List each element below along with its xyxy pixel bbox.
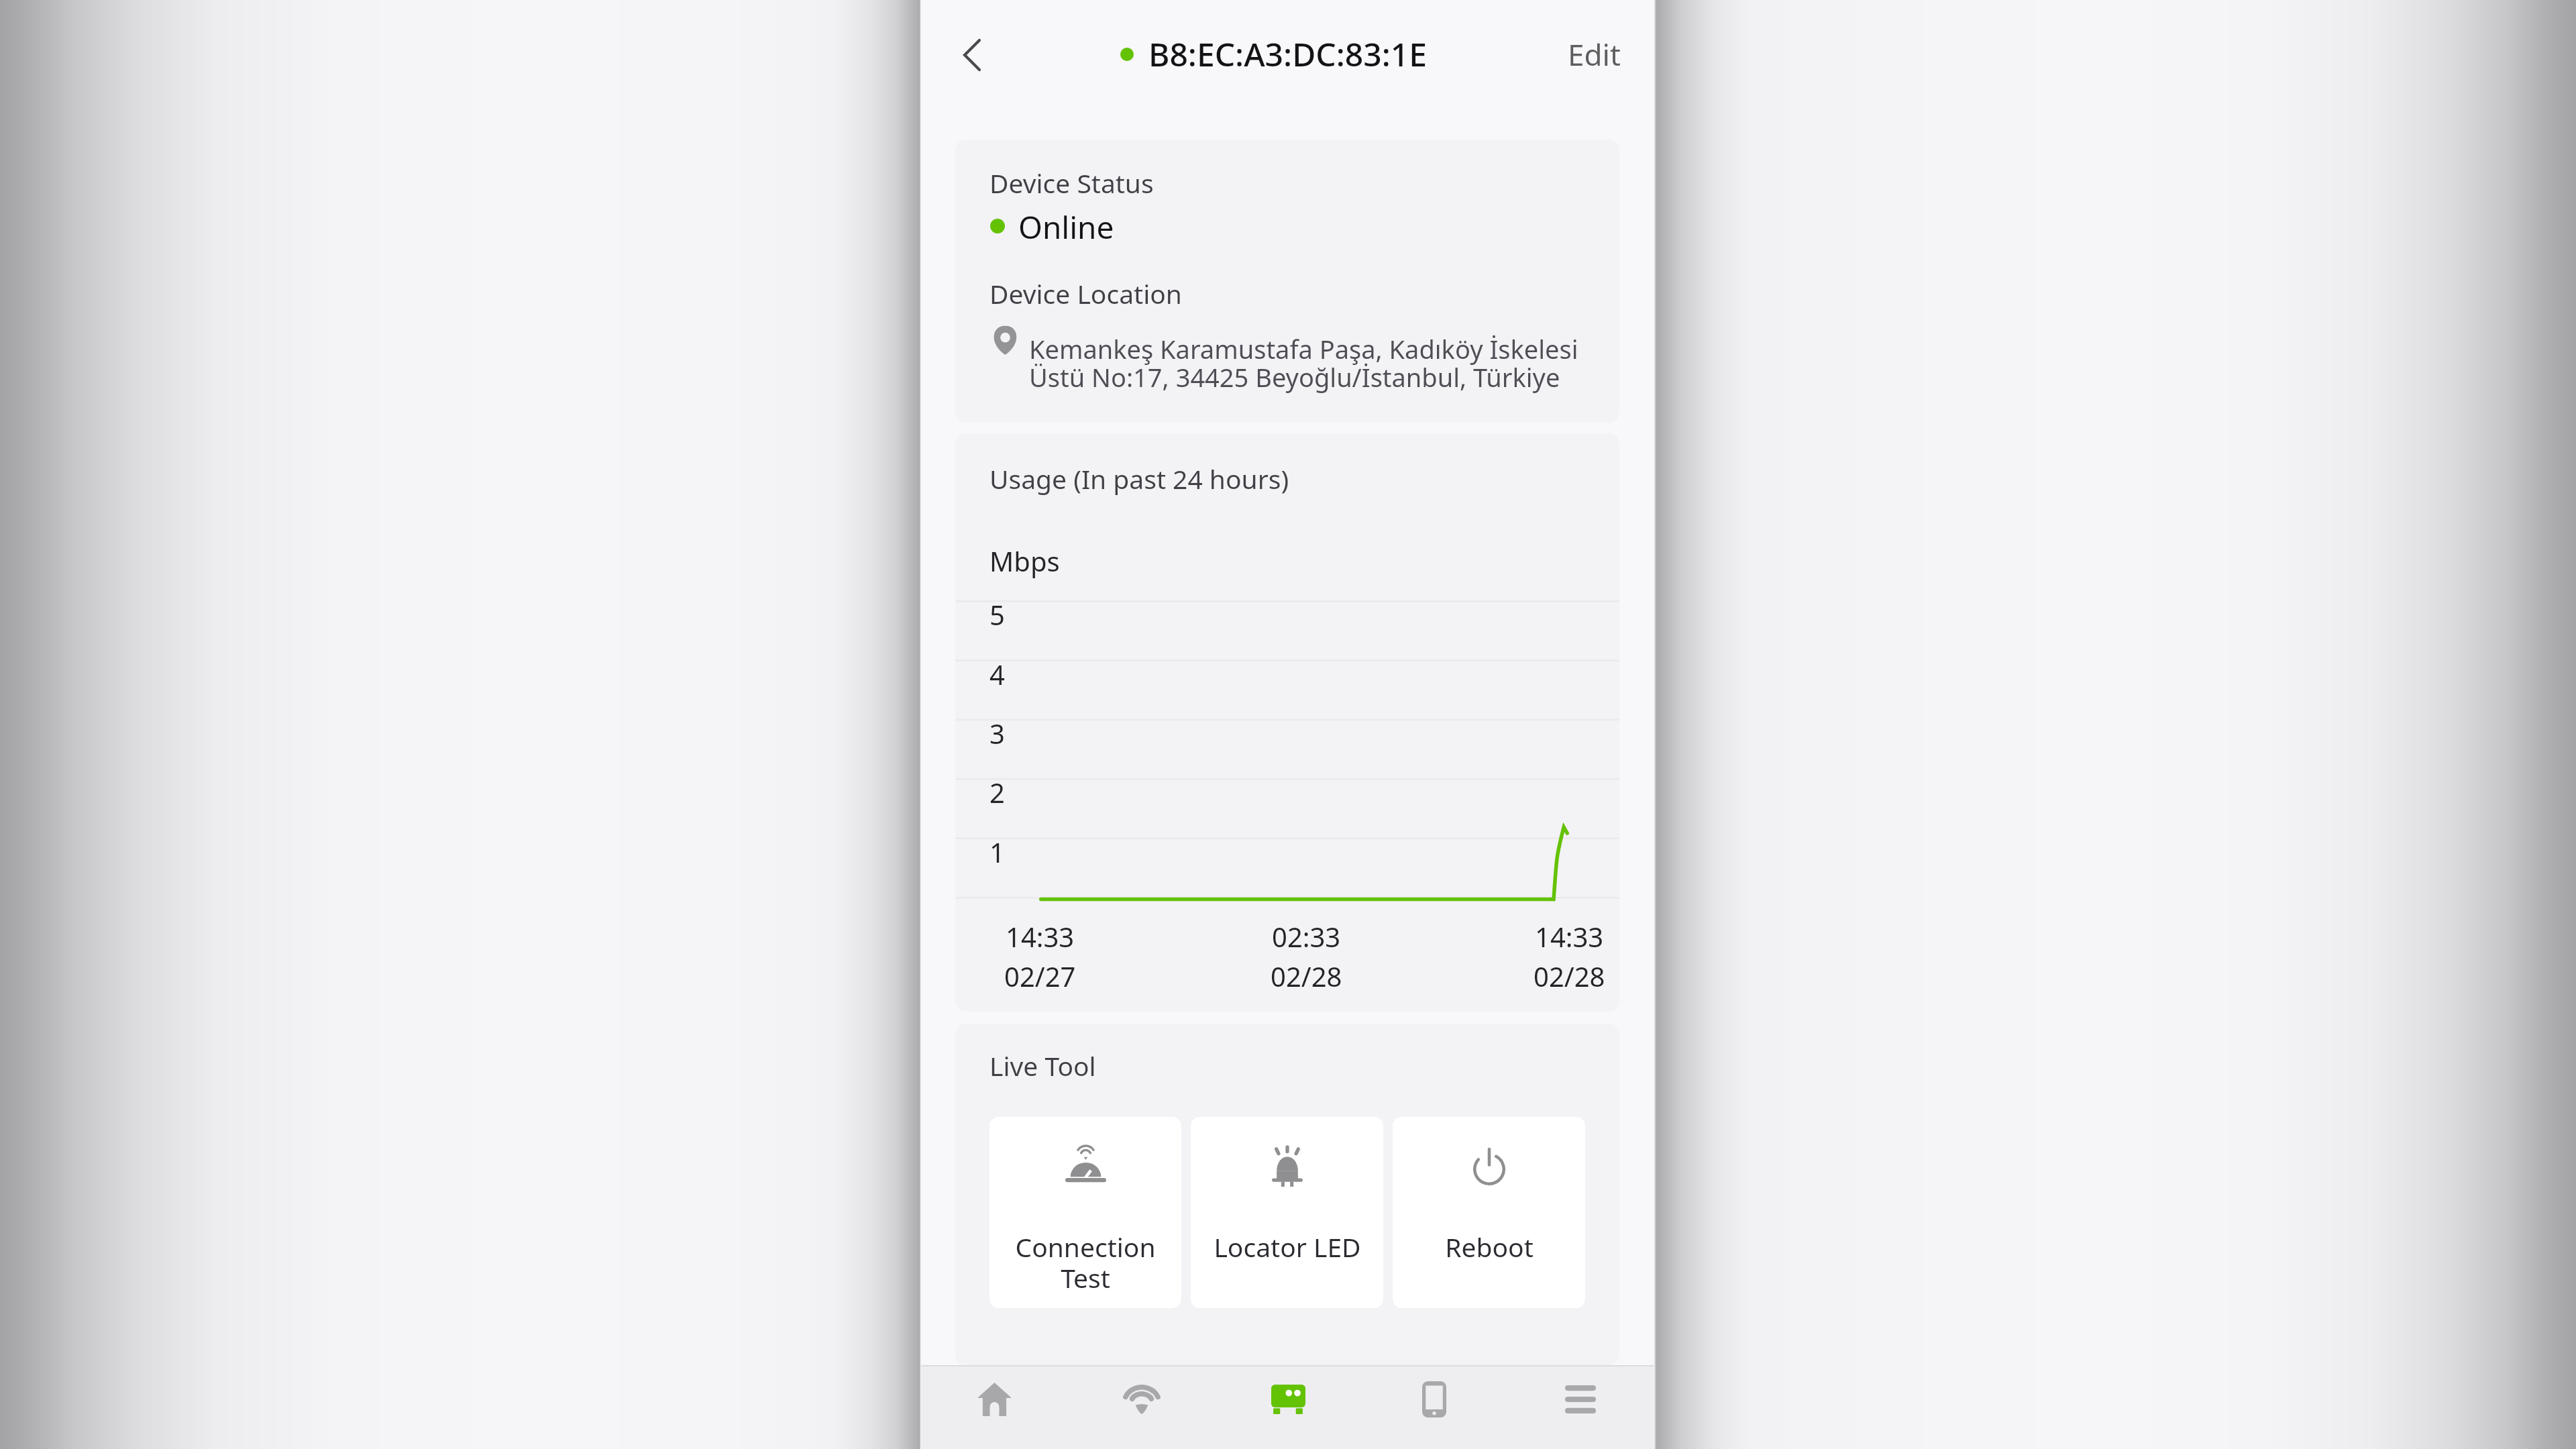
staticText: Mbps <box>989 543 1060 579</box>
staticText: 02/28 <box>1271 958 1342 994</box>
staticText: Usage (In past 24 hours) <box>989 461 1289 496</box>
staticText: 5 <box>989 596 1005 633</box>
button[interactable]: Edit <box>1552 25 1654 84</box>
staticText: 14:33 <box>1006 918 1075 955</box>
staticText: Live Tool <box>989 1048 1096 1083</box>
staticText: Device Status <box>989 165 1154 201</box>
staticText: 1 <box>989 834 1005 870</box>
staticText: Kemankeş Karamustafa Paşa, Kadıköy İskel… <box>1029 331 1583 394</box>
staticText: Edit <box>1568 34 1621 74</box>
button[interactable]: Wi-Fi <box>1068 1366 1215 1449</box>
button[interactable]: More <box>1507 1366 1654 1449</box>
staticText: B8:EC:A3:DC:83:1E <box>1148 32 1427 76</box>
staticText: 02/28 <box>1534 958 1605 994</box>
staticText: 3 <box>989 715 1005 751</box>
staticText: 02:33 <box>1272 918 1341 955</box>
staticText: Device Location <box>989 276 1182 311</box>
staticText: 02/27 <box>1004 958 1076 994</box>
staticText: Reboot <box>1445 1229 1534 1265</box>
staticText: 14:33 <box>1535 918 1604 955</box>
button[interactable]: Back <box>945 28 996 79</box>
button[interactable]: Connection Test <box>989 1117 1181 1308</box>
staticText: 4 <box>989 656 1005 692</box>
button[interactable]: Locator LED <box>1191 1117 1383 1308</box>
button[interactable]: Clients <box>1361 1366 1507 1449</box>
staticText: Locator LED <box>1214 1229 1361 1265</box>
button[interactable]: Home <box>921 1366 1068 1449</box>
staticText: Online <box>1018 206 1114 248</box>
button[interactable]: Devices <box>1215 1366 1361 1449</box>
staticText: Connection Test <box>1015 1229 1156 1296</box>
staticText: 2 <box>989 774 1005 810</box>
button[interactable]: Reboot <box>1393 1117 1585 1308</box>
